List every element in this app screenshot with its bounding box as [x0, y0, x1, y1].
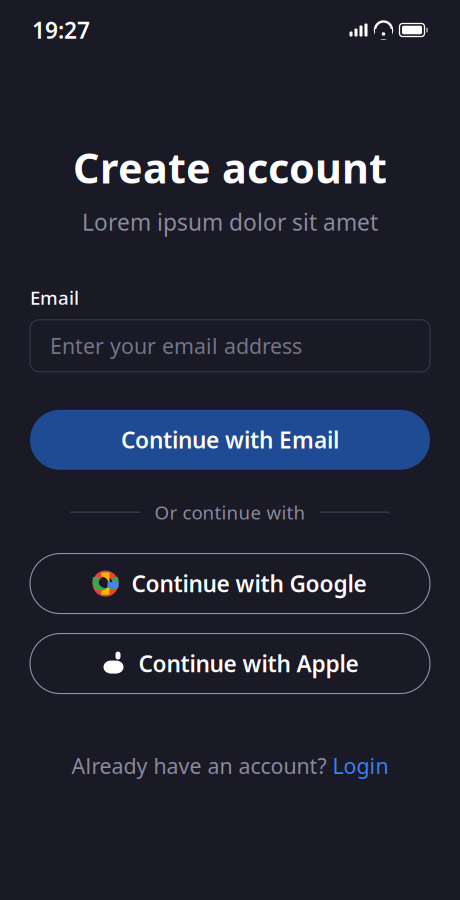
staticText: Enter your email address: [50, 332, 302, 360]
button[interactable]: Continue with Apple: [30, 634, 430, 694]
staticText: Already have an account?: [71, 752, 326, 780]
staticText: Create account: [73, 140, 387, 195]
button[interactable]: Continue with Email: [30, 410, 430, 470]
button[interactable]: Continue with Google: [30, 554, 430, 614]
staticText: Continue with Google: [131, 568, 366, 599]
staticText: Lorem ipsum dolor sit amet: [82, 207, 378, 237]
button[interactable]: Enter your email address: [30, 320, 430, 372]
button[interactable]: Already have an account?: [61, 746, 398, 786]
staticText: Or continue with: [154, 500, 305, 525]
staticText: Continue with Email: [121, 425, 339, 455]
staticText: Email: [30, 285, 79, 310]
staticText: Continue with Apple: [138, 648, 358, 679]
staticText: Login: [332, 752, 388, 780]
staticText: 19:27: [32, 15, 90, 45]
